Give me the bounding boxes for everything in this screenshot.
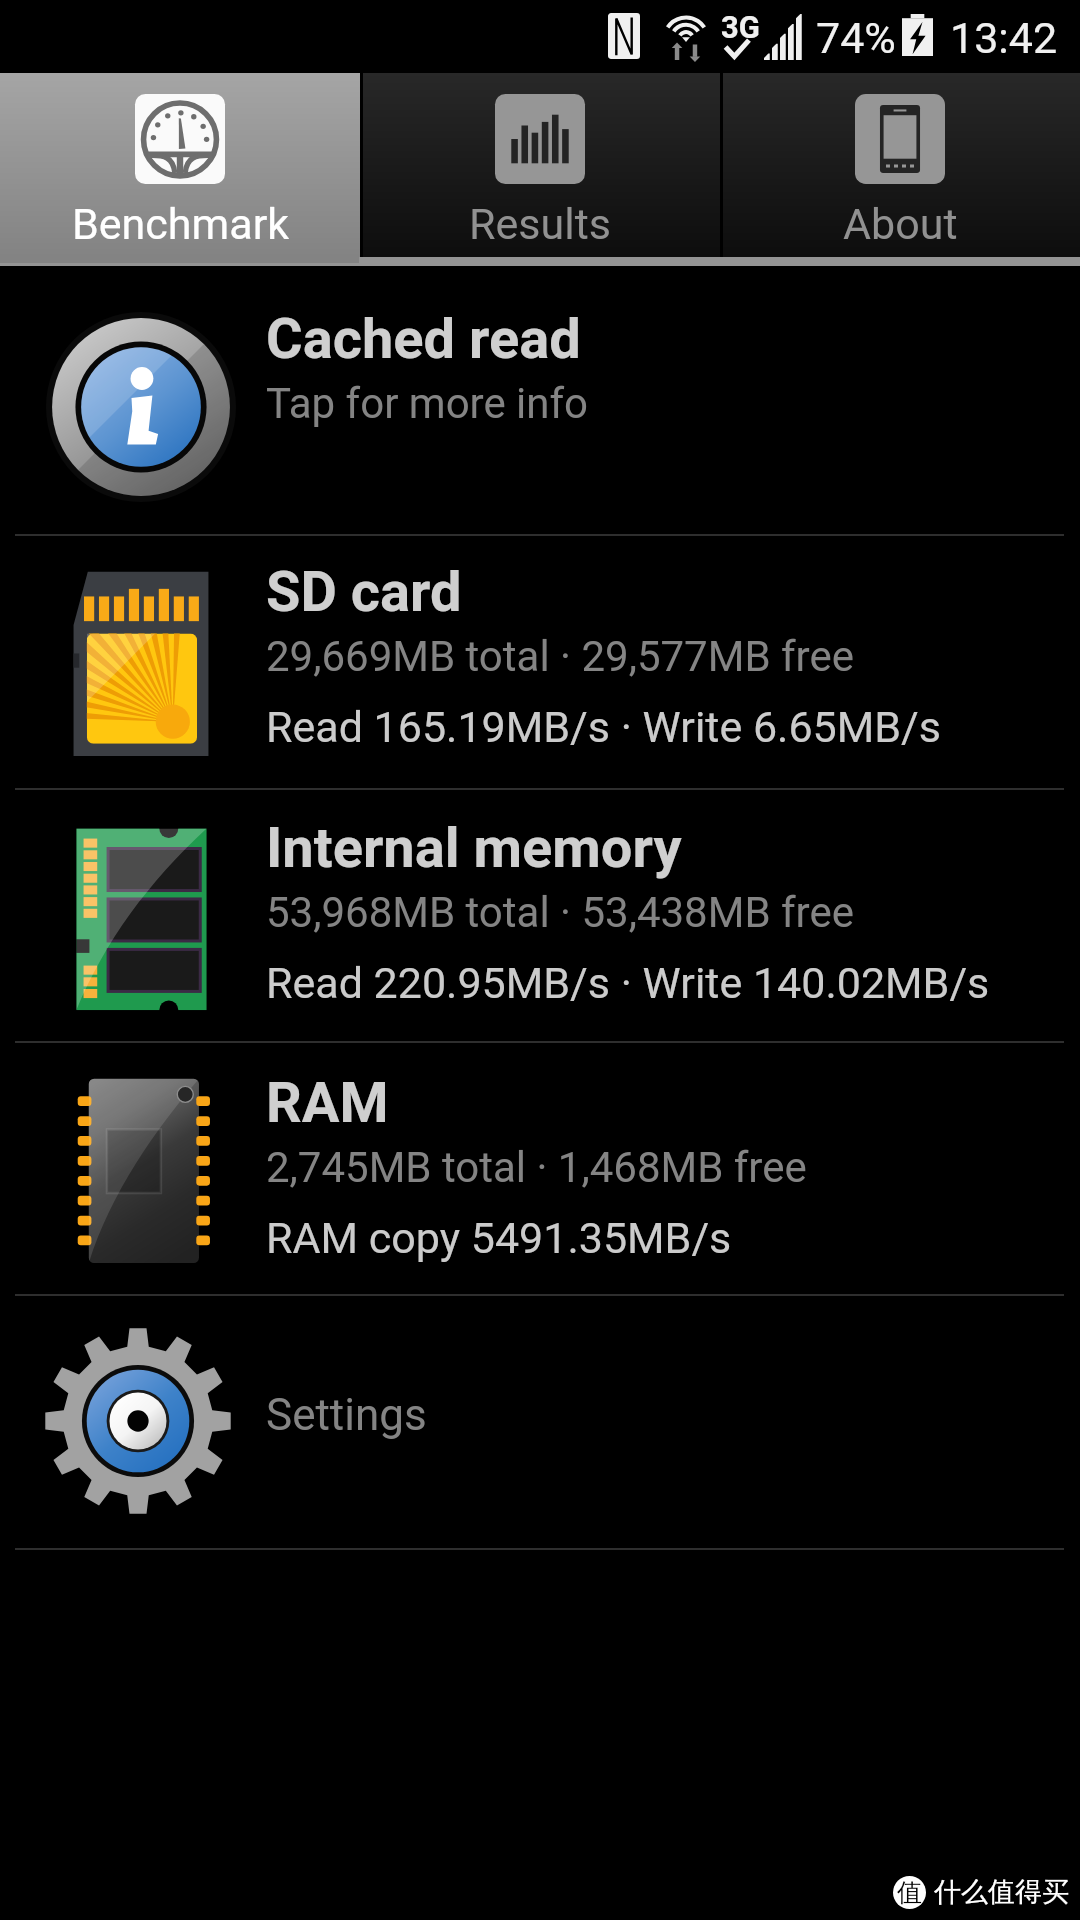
staticText: 值: [897, 1877, 922, 1908]
staticText: 什么值得买: [934, 1875, 1069, 1909]
button[interactable]: Internal memory: [0, 790, 1080, 1041]
staticText: SD card: [266, 559, 462, 625]
button[interactable]: Results: [360, 73, 720, 257]
button[interactable]: About: [720, 73, 1080, 257]
button[interactable]: Settings: [0, 1296, 1080, 1548]
staticText: Cached read: [266, 306, 581, 372]
button[interactable]: Benchmark: [0, 73, 360, 257]
button[interactable]: RAM: [0, 1043, 1080, 1294]
staticText: 2,745MB total · 1,468MB free: [266, 1143, 807, 1192]
button[interactable]: SD card: [0, 536, 1080, 788]
staticText: Benchmark: [72, 199, 289, 249]
staticText: Results: [469, 199, 611, 249]
staticText: RAM: [266, 1070, 389, 1136]
staticText: 74%: [816, 13, 896, 63]
staticText: Tap for more info: [266, 379, 589, 428]
staticText: Internal memory: [266, 815, 682, 881]
staticText: 3G: [721, 9, 760, 45]
other: Watermark: [893, 1875, 1069, 1909]
staticText: 53,968MB total · 53,438MB free: [266, 888, 854, 937]
staticText: Settings: [266, 1389, 427, 1441]
staticText: 29,669MB total · 29,577MB free: [266, 632, 854, 681]
staticText: Read 220.95MB/s · Write 140.02MB/s: [266, 958, 990, 1008]
button[interactable]: Cached read: [0, 266, 1080, 534]
staticText: About: [843, 199, 958, 249]
staticText: RAM copy 5491.35MB/s: [266, 1213, 732, 1263]
staticText: Read 165.19MB/s · Write 6.65MB/s: [266, 702, 941, 752]
staticText: 13:42: [950, 13, 1058, 63]
